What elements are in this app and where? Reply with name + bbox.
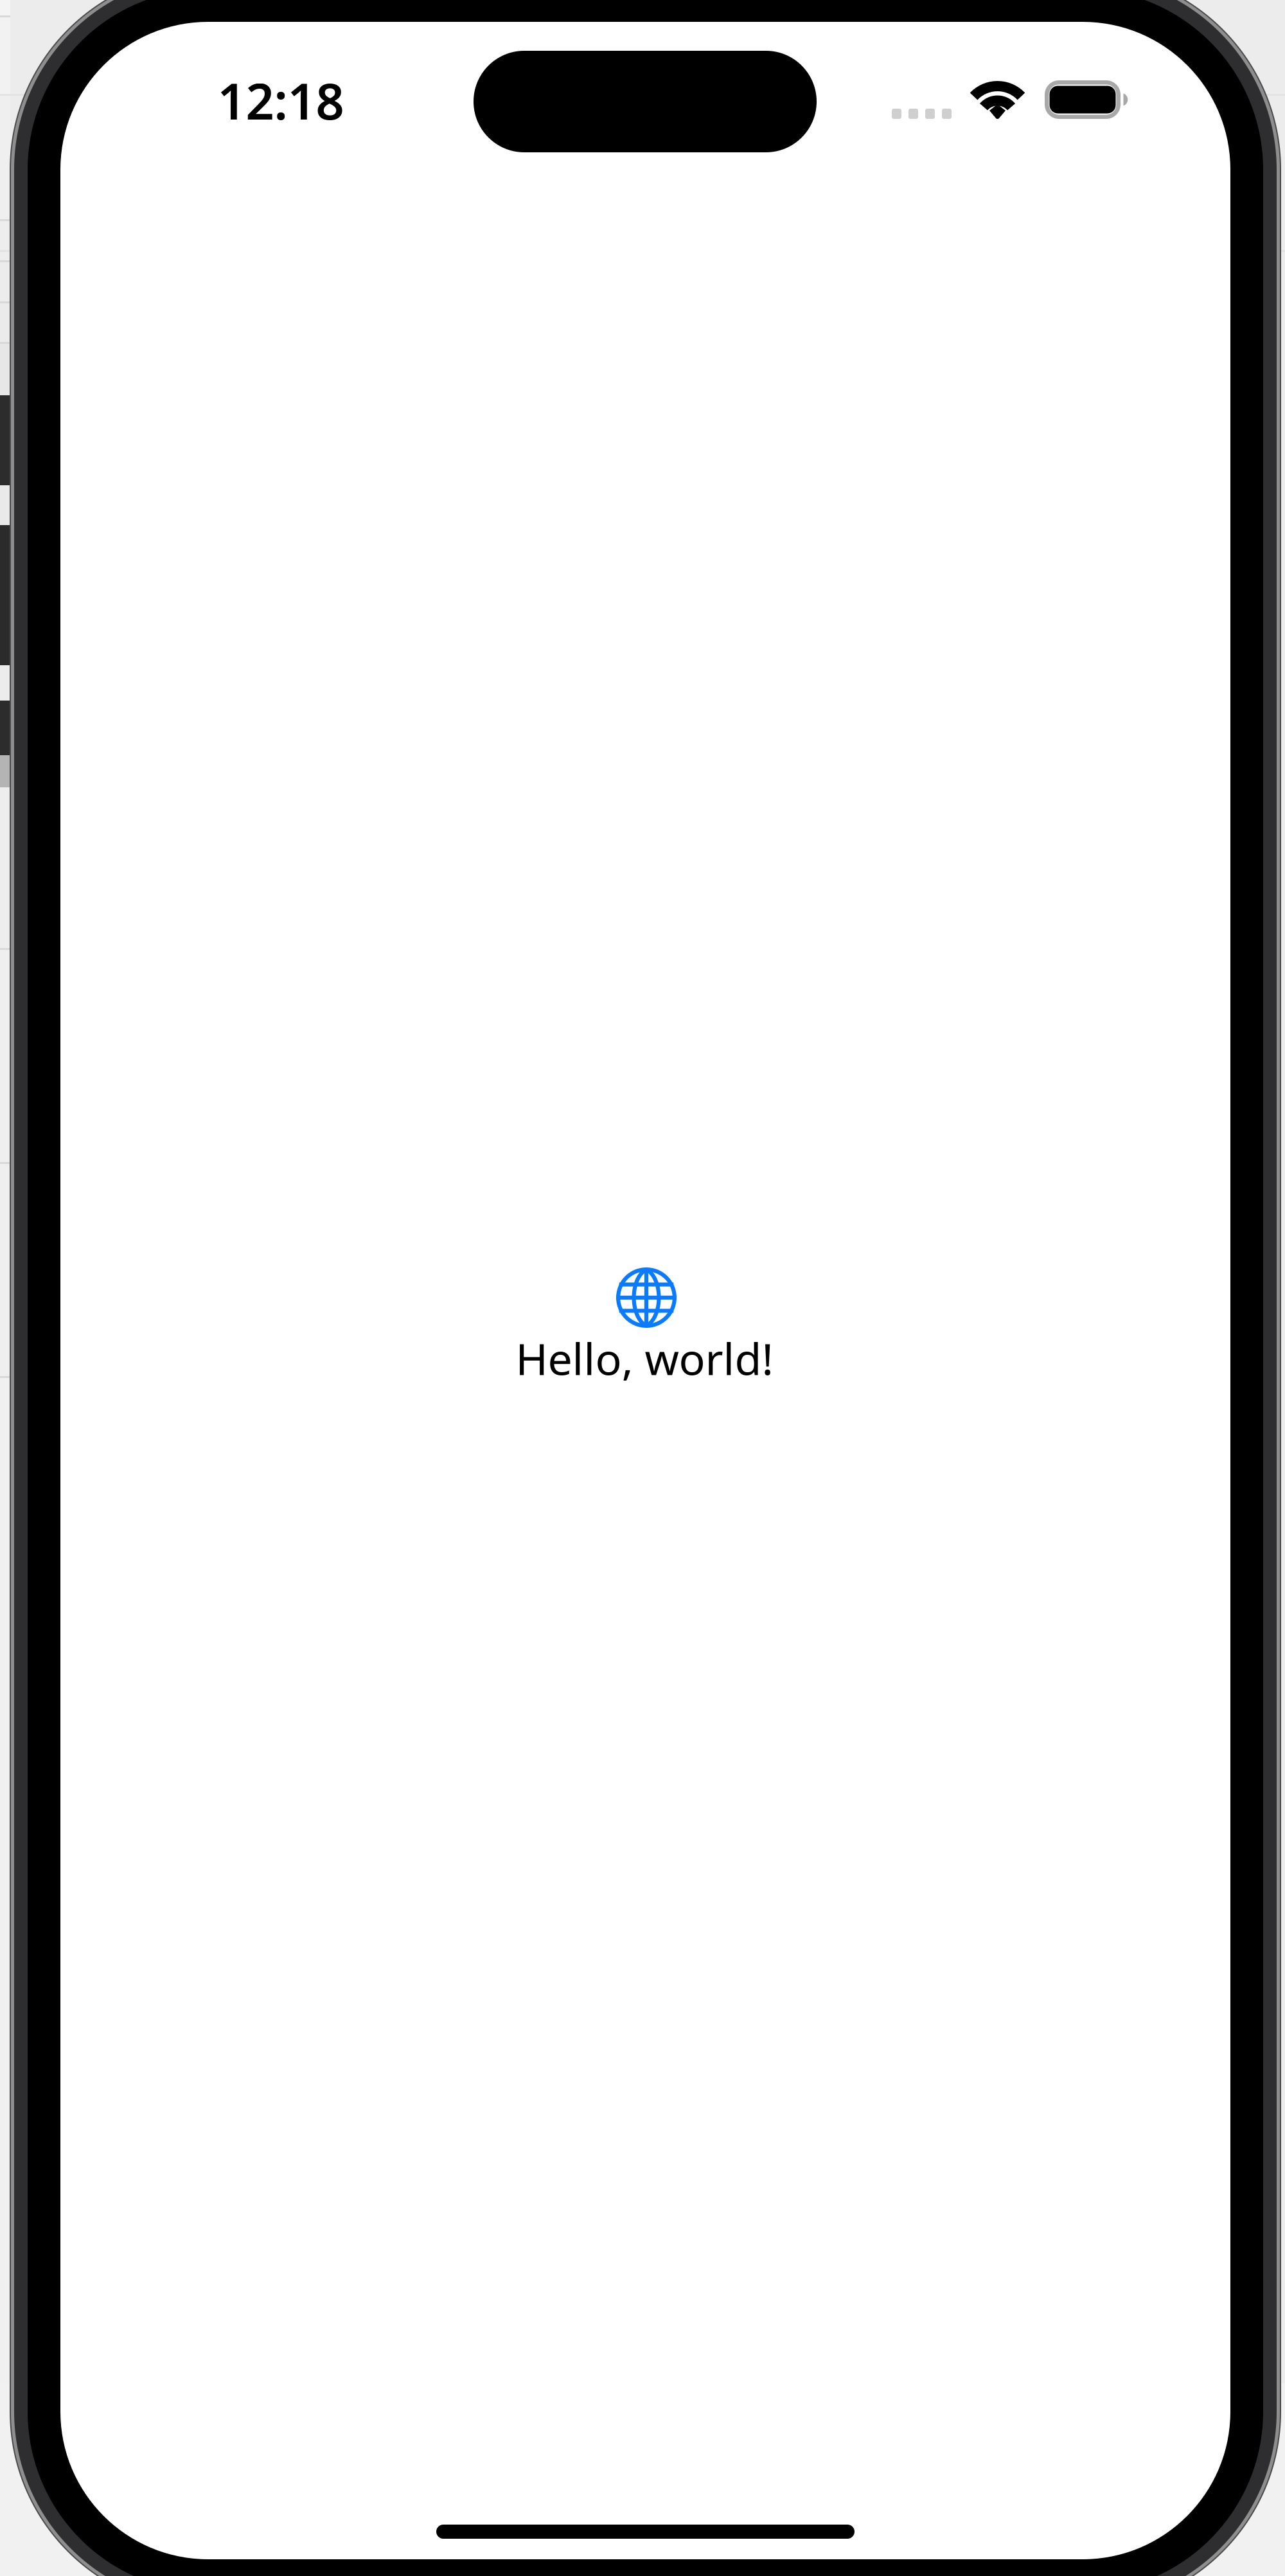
staticText: Hello, world! <box>516 1329 773 1387</box>
staticText: 12:18 <box>217 67 344 133</box>
